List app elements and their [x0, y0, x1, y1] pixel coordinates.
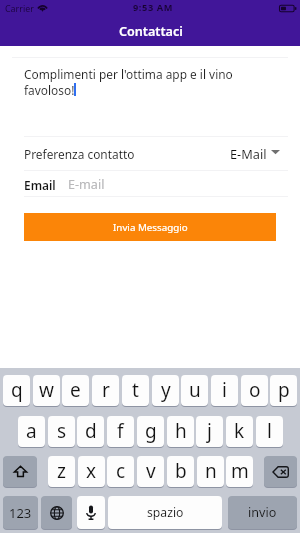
- button[interactable]: p: [270, 375, 297, 406]
- button[interactable]: Backspace: [264, 456, 297, 487]
- staticText: E-mail: [68, 176, 105, 193]
- button[interactable]: z: [48, 456, 75, 487]
- button[interactable]: s: [48, 416, 75, 447]
- staticText: Complimenti per l'ottima app e il vino f…: [24, 66, 233, 99]
- staticText: Preferenza contatto: [24, 146, 135, 162]
- staticText: Carrier: [5, 2, 34, 14]
- button[interactable]: f: [107, 416, 134, 447]
- button[interactable]: i: [211, 375, 238, 406]
- staticText: m: [231, 458, 249, 484]
- button[interactable]: 123: [3, 496, 38, 529]
- staticText: l: [267, 418, 272, 444]
- button[interactable]: t: [122, 375, 149, 406]
- button[interactable]: k: [226, 416, 253, 447]
- staticText: invio: [248, 504, 277, 521]
- staticText: E-Mail: [230, 145, 267, 162]
- staticText: 9:53 AM: [133, 1, 173, 14]
- staticText: q: [11, 377, 23, 403]
- staticText: Invia Messaggio: [113, 221, 188, 234]
- button[interactable]: v: [137, 456, 164, 487]
- staticText: u: [189, 377, 201, 403]
- staticText: x: [86, 458, 97, 484]
- button[interactable]: x: [78, 456, 105, 487]
- staticText: g: [145, 418, 157, 444]
- staticText: r: [102, 377, 110, 403]
- button[interactable]: h: [167, 416, 194, 447]
- staticText: t: [132, 377, 139, 403]
- staticText: Email: [24, 177, 56, 193]
- button[interactable]: invio: [228, 496, 297, 529]
- staticText: s: [57, 418, 67, 444]
- button[interactable]: Dictate: [77, 496, 105, 529]
- button[interactable]: l: [256, 416, 283, 447]
- button[interactable]: Invia Messaggio: [24, 213, 276, 241]
- staticText: c: [116, 458, 126, 484]
- button[interactable]: m: [226, 456, 253, 487]
- staticText: d: [85, 418, 97, 444]
- staticText: z: [57, 458, 66, 484]
- staticText: p: [278, 377, 290, 403]
- staticText: f: [117, 418, 124, 444]
- button[interactable]: r: [92, 375, 119, 406]
- staticText: k: [234, 418, 245, 444]
- staticText: 123: [9, 504, 32, 522]
- staticText: w: [39, 377, 54, 403]
- button[interactable]: a: [18, 416, 45, 447]
- button[interactable]: Change keyboard language: [41, 496, 72, 529]
- staticText: h: [175, 418, 187, 444]
- button[interactable]: b: [167, 456, 194, 487]
- staticText: n: [205, 458, 217, 484]
- staticText: v: [146, 458, 156, 484]
- button[interactable]: q: [3, 375, 30, 406]
- button[interactable]: c: [107, 456, 134, 487]
- staticText: Contattaci: [119, 23, 183, 40]
- button[interactable]: u: [181, 375, 208, 406]
- button[interactable]: n: [197, 456, 224, 487]
- staticText: j: [207, 418, 212, 444]
- staticText: i: [222, 377, 227, 403]
- staticText: b: [175, 458, 187, 484]
- button[interactable]: Shift: [3, 456, 37, 487]
- button[interactable]: w: [33, 375, 60, 406]
- button[interactable]: e: [62, 375, 89, 406]
- staticText: y: [161, 377, 171, 403]
- staticText: e: [70, 377, 81, 403]
- button[interactable]: j: [196, 416, 223, 447]
- button[interactable]: Preferenza contatto: [24, 137, 280, 170]
- button[interactable]: d: [77, 416, 104, 447]
- button[interactable]: y: [152, 375, 179, 406]
- button[interactable]: o: [241, 375, 268, 406]
- button[interactable]: g: [137, 416, 164, 447]
- staticText: a: [26, 418, 37, 444]
- button[interactable]: spazio: [108, 496, 222, 529]
- staticText: o: [249, 377, 261, 403]
- staticText: spazio: [147, 504, 184, 521]
